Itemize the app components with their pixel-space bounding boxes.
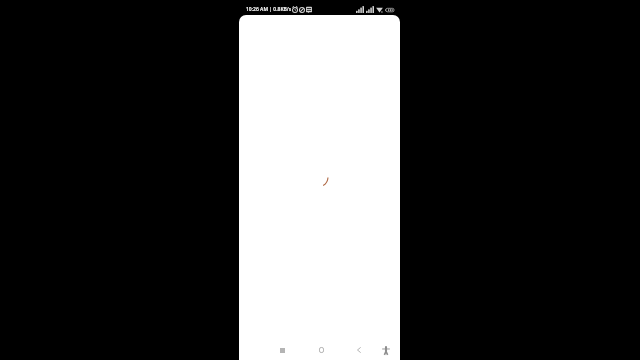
button[interactable]: Accessibility [372, 340, 400, 360]
staticText: 10:26 AM | 0.8KB/s [246, 6, 292, 13]
button[interactable]: Back [345, 340, 373, 360]
button[interactable]: Recents [268, 340, 296, 360]
button[interactable]: Home [307, 340, 335, 360]
other: Loading [308, 167, 328, 187]
